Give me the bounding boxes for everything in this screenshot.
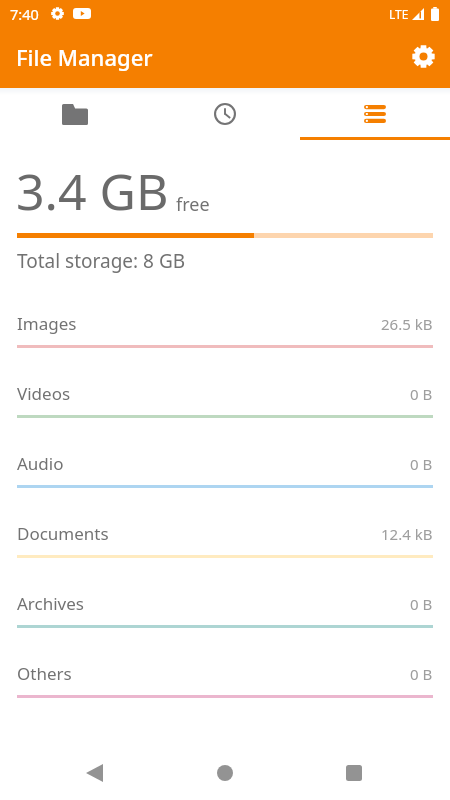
staticText: Documents: [17, 522, 381, 545]
button[interactable]: Audio: [0, 438, 450, 508]
staticText: 12.4 kB: [381, 524, 433, 544]
staticText: 7:40: [10, 4, 39, 24]
staticText: 3.4 GB: [16, 157, 169, 225]
button[interactable]: Recents: [330, 749, 378, 797]
staticText: 0 B: [410, 594, 433, 614]
staticText: Audio: [17, 452, 410, 475]
button[interactable]: Recent: [150, 88, 300, 140]
button[interactable]: Documents: [0, 508, 450, 578]
staticText: Archives: [17, 592, 410, 615]
staticText: 0 B: [410, 454, 433, 474]
staticText: LTE: [389, 6, 409, 22]
button[interactable]: Back: [70, 749, 118, 797]
button[interactable]: Videos: [0, 368, 450, 438]
staticText: Videos: [17, 382, 410, 405]
button[interactable]: Home: [201, 749, 249, 797]
staticText: Others: [17, 662, 410, 685]
button[interactable]: Others: [0, 648, 450, 718]
staticText: Images: [17, 312, 381, 335]
button[interactable]: Images: [0, 298, 450, 368]
staticText: free: [176, 192, 210, 217]
button[interactable]: Folders: [0, 88, 150, 140]
button[interactable]: Archives: [0, 578, 450, 648]
staticText: 0 B: [410, 664, 433, 684]
staticText: File Manager: [16, 42, 394, 72]
button[interactable]: Storage: [300, 88, 450, 140]
staticText: Total storage: 8 GB: [17, 248, 186, 274]
staticText: 0 B: [410, 384, 433, 404]
staticText: 26.5 kB: [381, 314, 433, 334]
button[interactable]: Settings: [394, 32, 450, 88]
